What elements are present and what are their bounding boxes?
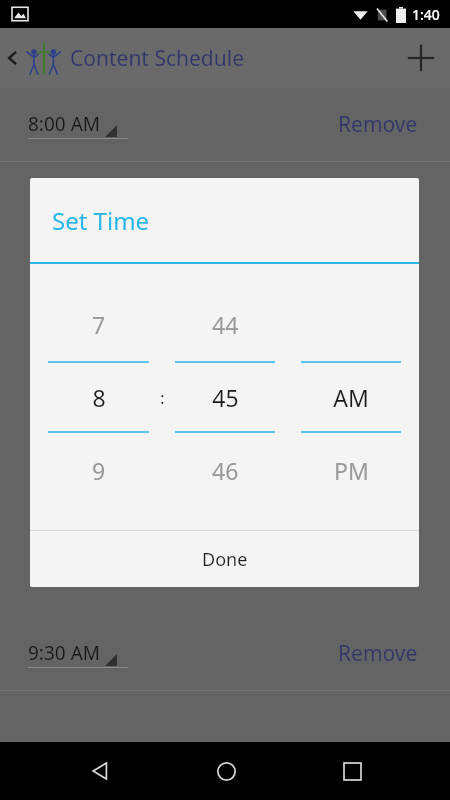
button[interactable]: 9:30 AM — [28, 636, 128, 672]
button[interactable]: Recent apps — [326, 745, 379, 798]
staticText: Content Schedule — [70, 44, 244, 73]
staticText: 9 — [92, 455, 106, 486]
button[interactable]: Remove — [334, 104, 422, 145]
button[interactable]: Home — [199, 744, 254, 799]
button[interactable]: 8:00 AM — [28, 107, 128, 143]
button[interactable]: AM — [301, 287, 401, 507]
staticText: PM — [334, 455, 369, 486]
button[interactable]: Done — [30, 531, 419, 587]
staticText: : — [160, 386, 165, 409]
button[interactable]: Add — [392, 31, 450, 85]
staticText: Done — [202, 547, 248, 572]
staticText: 8:00 AM — [28, 111, 101, 137]
staticText: Remove — [338, 110, 418, 139]
staticText: AM — [333, 382, 369, 413]
staticText: 46 — [212, 455, 239, 486]
button[interactable]: Back — [72, 743, 128, 799]
staticText: Set Time — [52, 204, 150, 237]
staticText: 45 — [212, 382, 239, 413]
staticText: 9:30 AM — [28, 640, 101, 666]
staticText: Remove — [338, 639, 418, 668]
button[interactable]: Navigate up — [0, 32, 66, 84]
staticText: 7 — [92, 309, 106, 340]
staticText: 1:40 — [412, 5, 440, 24]
staticText: 8 — [92, 382, 106, 413]
button[interactable]: Remove — [334, 633, 422, 674]
staticText: 44 — [212, 309, 239, 340]
button[interactable]: 44 — [175, 287, 275, 507]
button[interactable]: 7 — [48, 287, 149, 507]
